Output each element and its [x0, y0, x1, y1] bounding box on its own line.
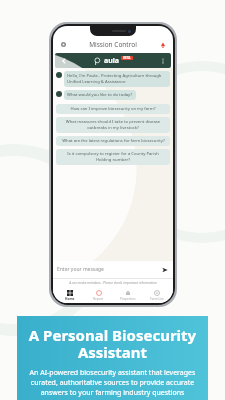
button[interactable]: Send	[160, 265, 169, 274]
staticText: What would you like to do today?	[67, 92, 133, 98]
staticText: Enter your message	[57, 266, 160, 273]
button[interactable]: Is it compulsory to register for a Count…	[56, 149, 170, 165]
staticText: Properties	[120, 297, 136, 301]
button[interactable]: Notifications	[157, 39, 168, 50]
staticText: Home	[65, 297, 75, 301]
staticText: Mission Control	[69, 40, 157, 49]
staticText: Hello, I'm Paula - Protecting Agricultur…	[67, 73, 167, 85]
button[interactable]: Home	[55, 289, 84, 302]
staticText: How can I improve biosecurity on my farm…	[70, 106, 156, 112]
button[interactable]: What are the latest regulations for farm…	[56, 136, 170, 146]
button[interactable]: Back	[59, 56, 68, 65]
staticText: Report	[93, 297, 104, 301]
staticText: A Personal Biosecurity Assistant	[27, 325, 198, 363]
button[interactable]: Settings	[58, 39, 69, 50]
button[interactable]: Properties	[113, 289, 142, 302]
button[interactable]: Report	[84, 289, 113, 302]
button[interactable]: What measures should I take to prevent d…	[56, 117, 170, 133]
button[interactable]: More options	[158, 56, 167, 65]
staticText: aula	[104, 56, 120, 66]
button[interactable]: Enter your message	[57, 264, 169, 275]
button[interactable]: Farm List	[142, 289, 171, 302]
button[interactable]: Hello, I'm Paula - Protecting Agricultur…	[64, 71, 170, 87]
button[interactable]: What would you like to do today?	[64, 90, 136, 100]
staticText: A can make mistakes - Please check impor…	[53, 281, 173, 285]
button[interactable]: How can I improve biosecurity on my farm…	[56, 104, 170, 114]
staticText: An AI-powered biosecurity assistant that…	[27, 368, 198, 398]
staticText: Farm List	[150, 297, 164, 301]
staticText: What measures should I take to prevent d…	[59, 119, 167, 131]
staticText: Is it compulsory to register for a Count…	[59, 151, 167, 163]
staticText: BETA	[123, 56, 131, 60]
staticText: What are the latest regulations for farm…	[62, 138, 165, 144]
